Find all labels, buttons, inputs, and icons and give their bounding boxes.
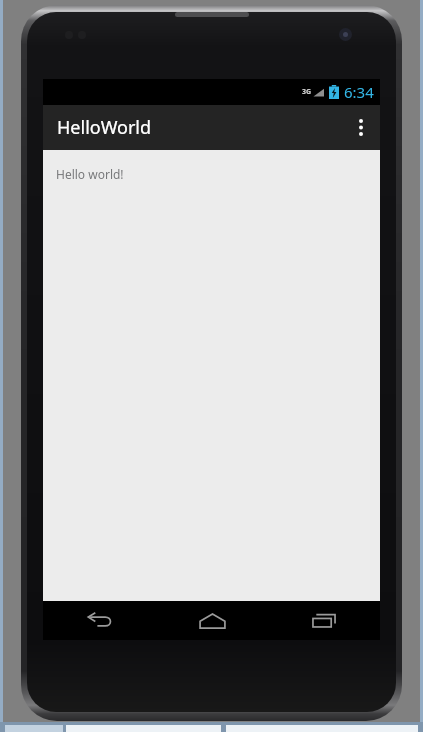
button[interactable]: Back (43, 601, 156, 640)
staticText: 6:34 (344, 82, 374, 102)
staticText: HelloWorld (57, 115, 152, 140)
staticText: 3G (302, 87, 312, 97)
button[interactable]: More options (342, 105, 380, 150)
staticText: Hello world! (56, 166, 124, 182)
button[interactable]: Home (156, 601, 268, 640)
button[interactable]: Recent apps (268, 601, 380, 640)
